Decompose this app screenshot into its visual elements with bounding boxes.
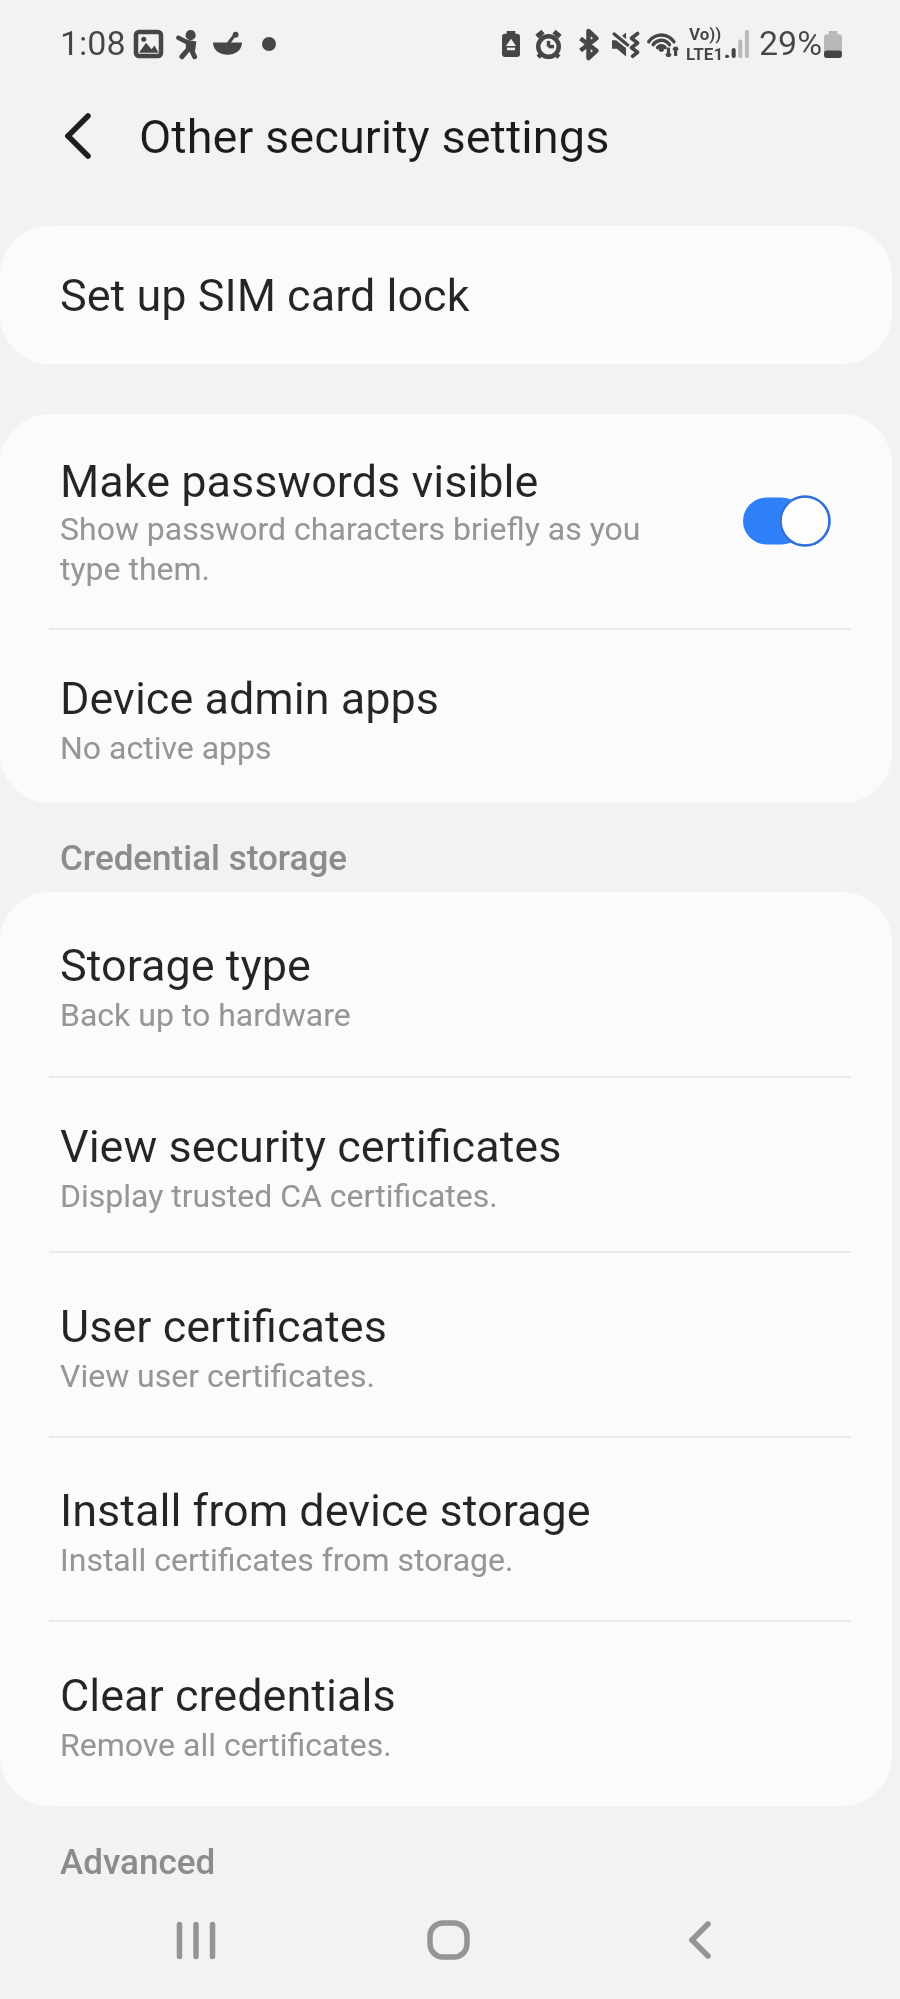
button[interactable]: Device admin apps bbox=[0, 630, 892, 803]
button[interactable]: User certificates bbox=[0, 1253, 892, 1436]
button[interactable]: Make passwords visible bbox=[0, 414, 892, 628]
staticText: LTE1 bbox=[686, 44, 724, 64]
staticText: Back up to hardware bbox=[60, 994, 351, 1034]
staticText: User certificates bbox=[60, 1299, 387, 1353]
button[interactable]: Back bbox=[637, 1881, 763, 1999]
staticText: Set up SIM card lock bbox=[60, 268, 470, 322]
button[interactable]: View security certificates bbox=[0, 1078, 892, 1251]
button[interactable]: Navigate up bbox=[19, 82, 137, 190]
button[interactable]: Clear credentials bbox=[0, 1622, 892, 1806]
button[interactable]: Recent apps bbox=[133, 1881, 259, 1999]
staticText: 29% bbox=[759, 23, 823, 63]
button[interactable]: Home bbox=[385, 1881, 511, 1999]
staticText: View user certificates. bbox=[60, 1355, 375, 1395]
staticText: Make passwords visible bbox=[60, 454, 539, 508]
staticText: Advanced bbox=[60, 1842, 216, 1883]
staticText: Install certificates from storage. bbox=[60, 1539, 514, 1579]
staticText: View security certificates bbox=[60, 1119, 562, 1173]
staticText: Display trusted CA certificates. bbox=[60, 1175, 498, 1215]
staticText: Vo)) bbox=[689, 24, 722, 44]
staticText: Install from device storage bbox=[60, 1483, 591, 1537]
staticText: Storage type bbox=[60, 938, 311, 992]
staticText: Credential storage bbox=[60, 838, 347, 879]
button[interactable]: Set up SIM card lock bbox=[0, 226, 892, 364]
staticText: Clear credentials bbox=[60, 1668, 396, 1722]
button[interactable]: Storage type bbox=[0, 892, 892, 1076]
staticText: Show password characters briefly as you … bbox=[60, 508, 641, 588]
staticText: No active apps bbox=[60, 727, 272, 767]
staticText: Device admin apps bbox=[60, 671, 439, 725]
staticText: 1:08 bbox=[60, 23, 126, 63]
staticText: Remove all certificates. bbox=[60, 1724, 392, 1764]
button[interactable]: Install from device storage bbox=[0, 1438, 892, 1620]
button[interactable]: Make passwords visible, on bbox=[729, 478, 847, 564]
staticText: Other security settings bbox=[139, 109, 610, 164]
